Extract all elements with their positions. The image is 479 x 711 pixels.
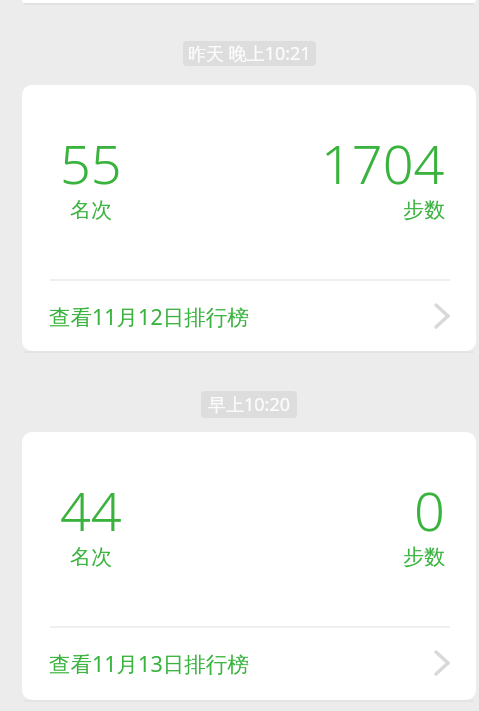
staticText: 查看11月12日排行榜 — [49, 302, 249, 331]
staticText: 早上10:20 — [208, 392, 291, 417]
staticText: 0 — [414, 473, 445, 547]
staticText: 1704 — [321, 126, 445, 200]
staticText: 昨天 晚上10:21 — [188, 41, 311, 66]
staticText: 查看11月13日排行榜 — [49, 649, 249, 678]
staticText: 步数 — [403, 197, 445, 223]
staticText: 44 — [60, 473, 122, 547]
button[interactable]: 查看11月13日排行榜 — [22, 627, 476, 698]
button[interactable]: 查看11月12日排行榜 — [22, 280, 476, 351]
staticText: 55 — [60, 126, 122, 200]
staticText: 步数 — [403, 544, 445, 570]
staticText: 名次 — [70, 197, 112, 223]
staticText: 名次 — [70, 544, 112, 570]
